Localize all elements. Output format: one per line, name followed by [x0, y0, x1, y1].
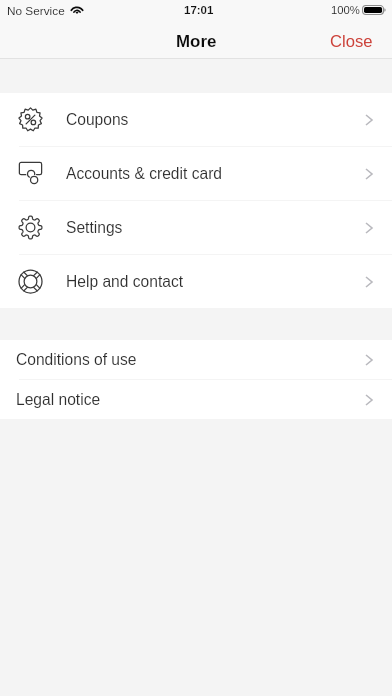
staticText: Legal notice: [16, 391, 101, 408]
staticText: More: [176, 32, 217, 51]
button[interactable]: Help and contact: [0, 255, 392, 308]
staticText: Settings: [66, 219, 123, 236]
staticText: 17:01: [184, 4, 214, 17]
other: Accounts & credit card: [18, 161, 43, 186]
button[interactable]: Close: [311, 25, 392, 58]
other: Settings: [18, 215, 43, 240]
button[interactable]: Accounts & credit card: [0, 147, 392, 200]
button[interactable]: Coupons: [0, 93, 392, 146]
staticText: 100%: [331, 4, 360, 17]
other: Help and contact: [18, 269, 43, 294]
staticText: Close: [330, 32, 373, 51]
button[interactable]: Legal notice: [0, 380, 392, 419]
other: Coupons: [18, 107, 43, 132]
staticText: Coupons: [66, 111, 129, 128]
button[interactable]: Conditions of use: [0, 340, 392, 379]
button[interactable]: Settings: [0, 201, 392, 254]
staticText: No Service: [7, 4, 65, 17]
staticText: Help and contact: [66, 273, 184, 290]
staticText: Conditions of use: [16, 351, 137, 368]
staticText: Accounts & credit card: [66, 165, 223, 182]
